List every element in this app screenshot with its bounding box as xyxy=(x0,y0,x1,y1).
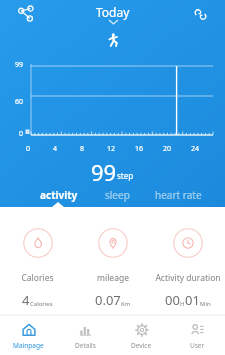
button[interactable]: sleep xyxy=(101,186,134,204)
button[interactable]: Link device xyxy=(188,2,212,26)
staticText: 12 xyxy=(107,144,116,154)
staticText: 0.07 xyxy=(95,291,121,309)
staticText: 4 xyxy=(53,144,58,154)
staticText: User xyxy=(190,341,205,350)
staticText: 60 xyxy=(15,97,24,107)
staticText: Min xyxy=(200,300,211,308)
staticText: activity xyxy=(40,188,78,202)
staticText: Mainpage xyxy=(13,341,44,350)
staticText: Calories xyxy=(21,272,54,284)
staticText: 01 xyxy=(185,291,200,309)
button[interactable]: Details xyxy=(57,320,113,350)
button[interactable]: Calories xyxy=(0,228,75,309)
button[interactable]: User xyxy=(169,320,225,350)
staticText: 20 xyxy=(163,144,172,154)
staticText: Calories xyxy=(30,300,53,308)
button[interactable]: heart rate xyxy=(151,186,206,204)
staticText: 99 xyxy=(91,157,117,183)
staticText: Device xyxy=(131,341,152,350)
staticText: Km xyxy=(121,300,131,308)
staticText: 16 xyxy=(135,144,144,154)
staticText: sleep xyxy=(105,188,130,202)
button[interactable]: Device xyxy=(113,320,169,350)
button[interactable]: mileage xyxy=(75,228,150,309)
staticText: H xyxy=(180,300,185,308)
staticText: 99 xyxy=(15,60,24,70)
button[interactable]: Activity duration xyxy=(150,228,225,309)
button[interactable]: Share xyxy=(13,1,39,27)
staticText: 4 xyxy=(22,291,30,309)
button[interactable]: Today xyxy=(96,4,130,24)
staticText: Today xyxy=(96,4,130,20)
staticText: heart rate xyxy=(155,188,202,202)
staticText: 00 xyxy=(165,291,180,309)
staticText: 0 xyxy=(26,144,31,154)
staticText: 8 xyxy=(80,144,85,154)
staticText: step xyxy=(117,170,134,181)
staticText: 0 xyxy=(19,129,24,139)
button[interactable]: activity xyxy=(36,186,82,204)
staticText: 24 xyxy=(191,144,200,154)
staticText: Details xyxy=(75,341,96,350)
button[interactable]: Mainpage xyxy=(0,320,57,350)
staticText: Activity duration xyxy=(155,272,221,284)
staticText: mileage xyxy=(97,272,129,284)
